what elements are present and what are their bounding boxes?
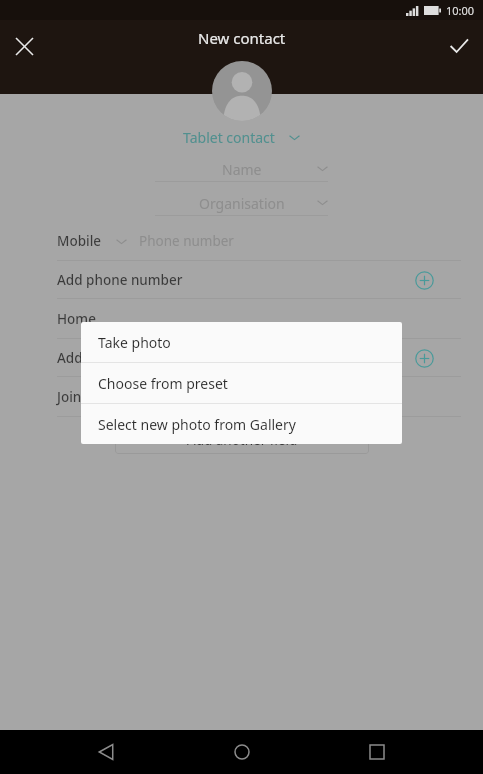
staticText: Home: [57, 310, 96, 328]
staticText: Add phone number: [57, 271, 183, 289]
button[interactable]: Close: [0, 22, 48, 70]
staticText: New contact: [198, 28, 286, 48]
staticText: Add another field: [187, 431, 298, 449]
button[interactable]: Select new photo from Gallery: [81, 404, 402, 444]
staticText: 10:00: [446, 3, 475, 18]
button[interactable]: Home: [10, 299, 473, 338]
staticText: Join with other contacts: [57, 388, 210, 406]
button[interactable]: Recent apps: [347, 730, 407, 774]
button[interactable]: Contact photo: [212, 61, 272, 121]
button[interactable]: Back: [76, 730, 136, 774]
button[interactable]: Save contact: [435, 22, 483, 70]
button[interactable]: Home: [212, 730, 272, 774]
staticText: Take photo: [98, 333, 171, 352]
button[interactable]: Join with other contacts: [10, 377, 473, 416]
button[interactable]: Mobile: [10, 226, 473, 256]
button[interactable]: Take photo: [81, 322, 402, 362]
staticText: Tablet contact: [183, 128, 275, 147]
staticText: Organisation: [199, 194, 285, 213]
button[interactable]: Name: [155, 159, 328, 182]
button[interactable]: Add another field: [115, 426, 369, 454]
staticText: Select new photo from Gallery: [98, 415, 296, 434]
other: Add Add email address: [413, 347, 435, 369]
staticText: Add email address: [57, 349, 176, 367]
staticText: Choose from preset: [98, 374, 228, 393]
staticText: Name: [222, 160, 262, 179]
button[interactable]: Organisation: [155, 193, 328, 216]
button[interactable]: Add phone number: [10, 261, 473, 298]
staticText: Mobile: [57, 232, 102, 250]
button[interactable]: Add email address: [10, 339, 473, 376]
staticText: Phone number: [139, 232, 234, 250]
button[interactable]: Tablet contact: [183, 128, 300, 147]
button[interactable]: Choose from preset: [81, 363, 402, 403]
other: Add Add phone number: [413, 269, 435, 291]
